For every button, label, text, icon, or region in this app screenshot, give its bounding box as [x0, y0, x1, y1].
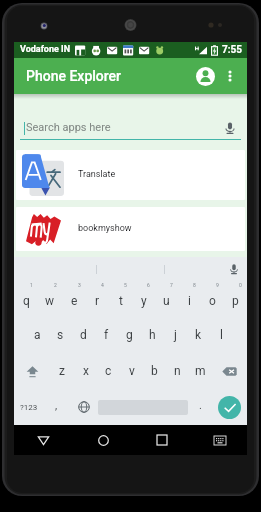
staticText: 7:55 — [222, 44, 243, 56]
button[interactable]: x — [74, 353, 97, 389]
staticText: 5 — [124, 282, 127, 288]
button[interactable]: Enter — [218, 396, 241, 419]
button[interactable]: Shift — [14, 353, 50, 389]
staticText: e — [71, 294, 78, 308]
button[interactable]: 6 — [132, 281, 155, 317]
button[interactable]: Backspace — [212, 353, 247, 389]
staticText: Phone Explorer — [26, 68, 122, 84]
button[interactable]: k — [187, 317, 210, 353]
button[interactable]: Account — [191, 62, 219, 90]
button[interactable]: d — [72, 317, 95, 353]
staticText: 1 — [30, 282, 33, 288]
button[interactable]: ?123 — [14, 389, 43, 425]
staticText: Vodafone IN — [20, 44, 71, 55]
button[interactable]: n — [166, 353, 189, 389]
button[interactable]: g — [118, 317, 141, 353]
button[interactable]: m — [189, 353, 212, 389]
staticText: d — [80, 328, 87, 342]
staticText: 7 — [170, 282, 173, 288]
staticText: a — [34, 328, 41, 342]
staticText: 3 — [78, 282, 81, 288]
button[interactable]: f — [95, 317, 118, 353]
button[interactable]: Home — [86, 425, 120, 455]
button[interactable]: a — [25, 317, 49, 353]
button[interactable]: Change language — [70, 389, 98, 425]
staticText: j — [174, 328, 177, 342]
staticText: i — [188, 294, 191, 308]
button[interactable]: c — [97, 353, 120, 389]
button[interactable]: Switch keyboard — [205, 425, 235, 455]
button[interactable]: h — [141, 317, 164, 353]
staticText: n — [174, 364, 181, 378]
button[interactable]: 0 — [224, 281, 247, 317]
button[interactable]: s — [49, 317, 72, 353]
staticText: 6 — [147, 282, 150, 288]
staticText: z — [59, 364, 65, 378]
staticText: t — [119, 294, 123, 308]
staticText: h — [149, 328, 156, 342]
staticText: u — [163, 294, 170, 308]
button[interactable]: 5 — [109, 281, 132, 317]
button[interactable]: 8 — [178, 281, 201, 317]
button[interactable]: , — [43, 389, 70, 425]
staticText: , — [55, 399, 58, 412]
button[interactable]: j — [164, 317, 187, 353]
staticText: w — [45, 294, 55, 308]
button[interactable]: 1 — [14, 281, 38, 317]
button[interactable]: 3 — [62, 281, 86, 317]
staticText: l — [220, 328, 223, 342]
staticText: g — [126, 328, 133, 342]
staticText: b — [151, 364, 158, 378]
button[interactable]: 9 — [201, 281, 224, 317]
staticText: Search apps here — [26, 121, 111, 134]
button[interactable]: . — [188, 389, 212, 425]
button[interactable]: Back — [26, 425, 60, 455]
staticText: c — [105, 364, 112, 378]
staticText: f — [104, 328, 109, 342]
staticText: o — [209, 294, 216, 308]
staticText: . — [199, 399, 202, 412]
button[interactable]: bookmyshow — [16, 207, 245, 251]
staticText: q — [23, 294, 30, 308]
staticText: r — [95, 294, 100, 308]
button[interactable]: 7 — [155, 281, 178, 317]
button[interactable]: b — [143, 353, 166, 389]
staticText: k — [195, 328, 202, 342]
button[interactable]: Voice input — [220, 257, 247, 281]
staticText: p — [232, 294, 239, 308]
staticText: x — [83, 364, 89, 378]
staticText: y — [141, 294, 147, 308]
staticText: 0 — [239, 282, 242, 288]
staticText: bookmyshow — [78, 223, 132, 234]
button[interactable]: More options — [219, 65, 241, 87]
staticText: 8 — [193, 282, 196, 288]
staticText: 2 — [54, 282, 57, 288]
staticText: s — [57, 328, 64, 342]
button[interactable]: l — [210, 317, 233, 353]
staticText: 9 — [216, 282, 219, 288]
button[interactable]: Voice search — [222, 120, 238, 136]
staticText: ?123 — [20, 403, 38, 412]
button[interactable]: Recent apps — [145, 425, 179, 455]
button[interactable]: v — [120, 353, 143, 389]
button[interactable]: z — [50, 353, 74, 389]
button[interactable]: 4 — [86, 281, 109, 317]
button[interactable]: Translate — [16, 150, 245, 200]
staticText: v — [129, 364, 135, 378]
staticText: 4 — [101, 282, 104, 288]
button[interactable]: 2 — [38, 281, 62, 317]
staticText: m — [195, 364, 206, 378]
staticText: Translate — [78, 169, 116, 180]
